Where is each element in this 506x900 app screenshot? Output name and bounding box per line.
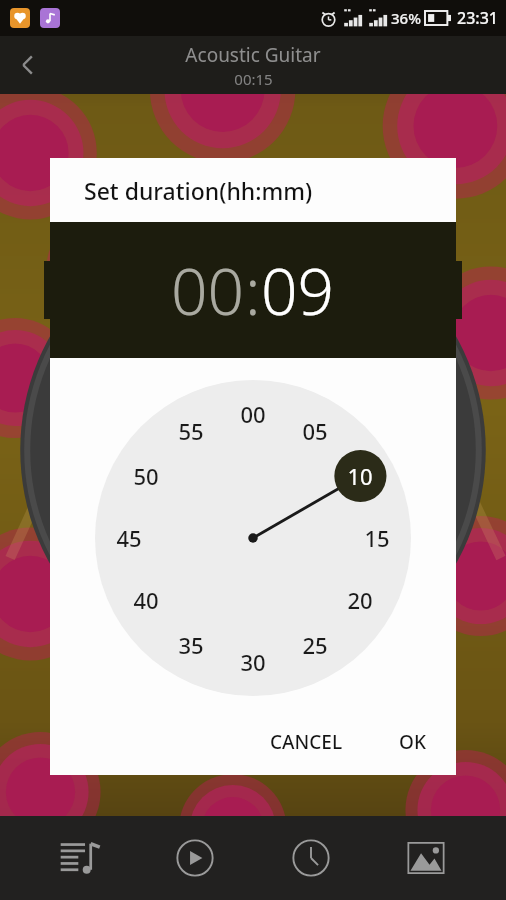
staticText: 25 [302,630,328,660]
button[interactable]: 09 [261,247,335,334]
staticText: 36% [391,8,421,28]
staticText: CANCEL [270,729,343,755]
staticText: Set duration(hh:mm) [84,175,313,206]
staticText: : [245,247,261,334]
button[interactable]: CANCEL [254,719,359,765]
staticText: 35 [178,630,204,660]
staticText: 45 [116,523,142,553]
button[interactable]: Back [0,37,56,93]
staticText: 15 [364,523,390,553]
button[interactable]: Timer [275,822,347,894]
button[interactable]: 00 [95,380,411,696]
staticText: 09 [261,247,335,334]
staticText: 00 [240,399,266,429]
staticText: 05 [302,416,328,446]
staticText: OK [399,729,426,755]
staticText: 30 [240,647,266,677]
staticText: 10 [347,461,373,491]
staticText: 00:15 [234,69,273,89]
staticText: 50 [133,461,159,491]
button[interactable]: Playlist [44,822,116,894]
staticText: 23:31 [457,7,498,29]
button[interactable]: 00 [171,247,245,334]
staticText: 40 [133,585,159,615]
staticText: 00 [171,247,245,334]
button[interactable]: OK [383,719,442,765]
staticText: 20 [347,585,373,615]
staticText: Acoustic Guitar [185,42,321,68]
button[interactable]: Gallery [390,822,462,894]
staticText: 55 [178,416,204,446]
button[interactable]: Play [159,822,231,894]
